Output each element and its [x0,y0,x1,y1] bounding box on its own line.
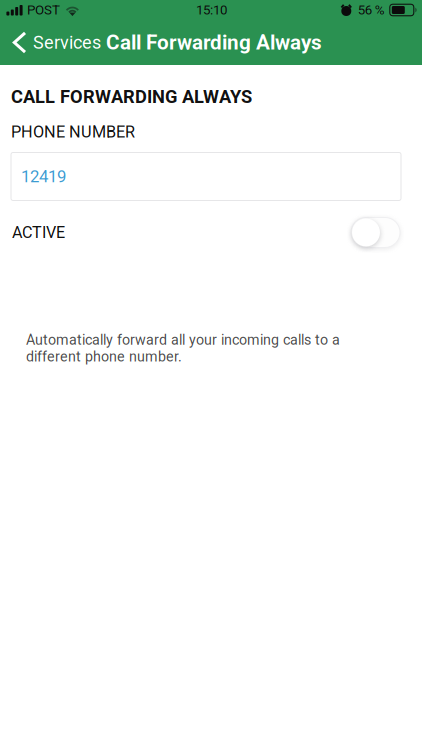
button[interactable]: Active toggle [351,217,422,247]
staticText: Call Forwarding Always [106,30,322,55]
staticText: 12419 [21,167,66,186]
button[interactable]: 12419 [0,152,422,200]
staticText: 15:10 [196,2,227,18]
staticText: POST [27,2,60,18]
button[interactable]: Services [0,23,101,62]
staticText: CALL FORWARDING ALWAYS [11,86,252,107]
staticText: Services [33,32,101,53]
staticText: ACTIVE [12,223,65,242]
staticText: 56 % [358,2,385,18]
staticText: Automatically forward all your incoming … [26,331,340,365]
staticText: PHONE NUMBER [11,122,135,141]
